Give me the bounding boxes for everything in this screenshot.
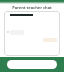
staticText: Parent teacher chat [12,5,52,10]
button[interactable] [7,60,57,69]
